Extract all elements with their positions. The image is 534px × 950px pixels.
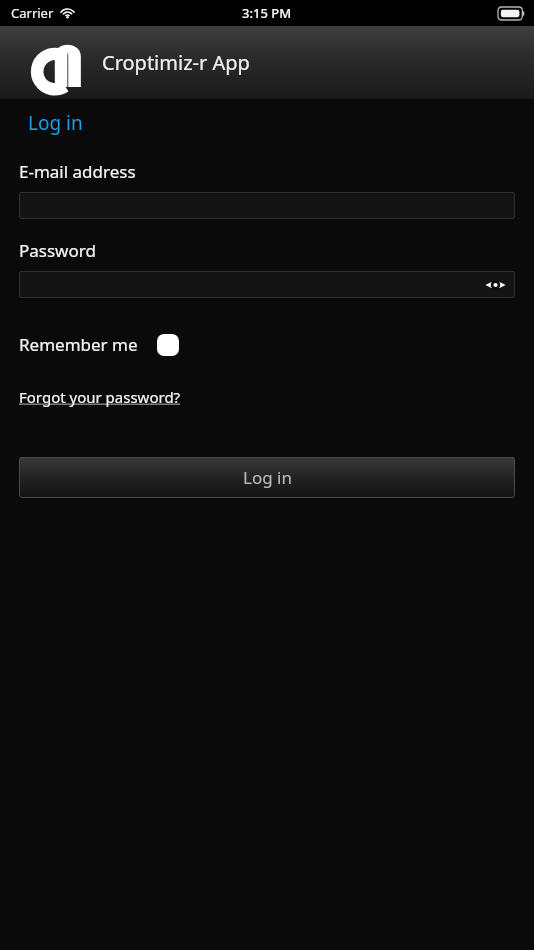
button[interactable]: Log in (28, 108, 83, 138)
button[interactable]: Remember me (19, 329, 179, 360)
staticText: Remember me (19, 333, 138, 356)
staticText: Forgot your password? (19, 387, 181, 407)
staticText: Carrier (11, 4, 54, 22)
button[interactable]: Forgot your password? (19, 387, 181, 407)
button[interactable]: Show password (482, 275, 508, 295)
staticText: Log in (243, 466, 292, 489)
staticText: Log in (28, 110, 83, 136)
staticText: E-mail address (19, 160, 136, 183)
staticText: Croptimiz-r App (102, 49, 250, 76)
button[interactable]: Show password (19, 271, 515, 298)
staticText: Password (19, 239, 96, 262)
staticText: 3:15 PM (242, 4, 292, 22)
button[interactable] (19, 192, 515, 219)
button[interactable]: Log in (19, 457, 515, 498)
